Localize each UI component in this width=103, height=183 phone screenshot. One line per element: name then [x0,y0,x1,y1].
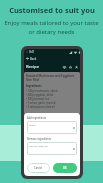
button[interactable]: onion [27,121,77,134]
staticText: • 2 tablespoons olive oil [26,105,55,109]
staticText: carrots, eggs, etc [29,144,49,147]
staticText: • 1 onion, garlic, minced [26,101,56,105]
button[interactable]: carrots, eggs, etc [27,142,77,155]
staticText: OK [63,166,67,170]
staticText: Roasted Mushroom and Eggplant Rice Pilaf [26,74,74,82]
staticText: Cancel [34,166,43,170]
staticText: • 200g basmati rice [26,97,50,101]
button[interactable]: Notifications [67,64,73,70]
staticText: onion [29,123,36,126]
button[interactable]: OK [53,163,77,173]
staticText: Back [30,57,37,61]
button[interactable]: Back [26,56,37,61]
staticText: Recipe [26,64,39,70]
staticText: Enjoy meals tailored to your taste or di… [4,19,99,36]
button[interactable]: Favourite [61,64,67,70]
staticText: Customised to suit you [9,5,95,15]
button[interactable]: Cancel [27,163,50,173]
staticText: Add ingredients [27,116,47,119]
staticText: • 100g mushrooms, sliced [26,89,58,93]
staticText: • 200g eggplant, diced [26,93,54,97]
button[interactable]: Profile [73,64,79,70]
staticText: Ingredients [26,84,42,88]
staticText: 9:41 [29,50,35,54]
staticText: Remove ingredients [27,137,51,140]
